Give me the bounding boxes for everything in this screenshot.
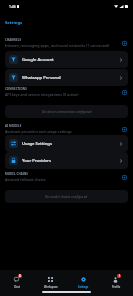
button[interactable]: Settings xyxy=(67,274,100,288)
button[interactable]: 2 xyxy=(0,274,34,288)
button[interactable]: Whatsapp Personal xyxy=(5,69,128,86)
staticText: CHANNELS xyxy=(5,38,22,42)
staticText: Your Providers xyxy=(22,158,52,164)
staticText: Workspace xyxy=(44,285,58,288)
button[interactable]: ! xyxy=(100,274,133,288)
staticText: API keys and service integrations (0 act… xyxy=(5,92,79,97)
staticText: MODEL CHAINS xyxy=(5,172,28,176)
staticText: Usage Settings xyxy=(22,141,52,147)
staticText: CONNECTIONS xyxy=(5,87,27,91)
staticText: No model chains configured xyxy=(45,194,88,199)
staticText: 2 xyxy=(19,274,21,278)
staticText: ! xyxy=(119,274,120,278)
staticText: AI MODELS xyxy=(5,124,22,128)
button[interactable]: Your Providers xyxy=(5,152,128,169)
staticText: Settings xyxy=(5,20,23,26)
button[interactable]: Workspace xyxy=(34,274,67,288)
staticText: Whatsapp Personal xyxy=(22,75,61,81)
staticText: Chat xyxy=(14,285,20,288)
button[interactable]: Usage Settings xyxy=(5,135,128,152)
button[interactable]: Add MODEL CHAINS xyxy=(120,173,128,181)
staticText: No direct connections configured xyxy=(42,109,92,114)
staticText: Profile xyxy=(112,285,121,288)
staticText: Inboxes, messaging apps, and social netw… xyxy=(5,43,110,48)
staticText: Settings xyxy=(78,285,89,288)
staticText: 1:46 xyxy=(9,4,16,9)
staticText: Assistant providers and usage settings xyxy=(5,129,72,134)
button[interactable]: Add CONNECTIONS xyxy=(120,88,128,96)
button[interactable]: Add AI MODELS xyxy=(120,125,128,133)
staticText: Google Account xyxy=(22,57,54,63)
button[interactable]: Google Account xyxy=(5,51,128,68)
button[interactable]: Add CHANNELS xyxy=(120,39,128,47)
staticText: Assisted fallback chains xyxy=(5,177,46,182)
